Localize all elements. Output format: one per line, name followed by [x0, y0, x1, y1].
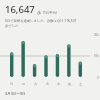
- staticText: 火: [34, 82, 38, 86]
- button[interactable]: 16,647: [5, 3, 96, 16]
- button[interactable]: 5日で目標を達成しました。歩数は合計 116,531: [5, 18, 92, 28]
- staticText: 土: [79, 82, 83, 86]
- staticText: 歩: [37, 10, 41, 15]
- staticText: 木: [57, 82, 61, 86]
- staticText: (1日平均): [43, 10, 57, 15]
- staticText: 0: [97, 76, 99, 80]
- staticText: 5日で目標を達成しました。歩数は合計 116,531: [5, 18, 77, 23]
- staticText: 月: [22, 82, 26, 86]
- staticText: 3月3日〜9日: [5, 91, 26, 96]
- staticText: 20k: [94, 33, 99, 37]
- staticText: 日: [10, 82, 14, 86]
- staticText: 16,647: [5, 3, 35, 16]
- staticText: 歩でした: [5, 24, 19, 28]
- button[interactable]: 3月3日〜9日: [5, 91, 100, 96]
- staticText: 10k: [94, 54, 99, 58]
- staticText: 金: [68, 82, 72, 86]
- button[interactable]: 週間歩数グラフ: [0, 32, 100, 82]
- staticText: 水: [46, 82, 50, 86]
